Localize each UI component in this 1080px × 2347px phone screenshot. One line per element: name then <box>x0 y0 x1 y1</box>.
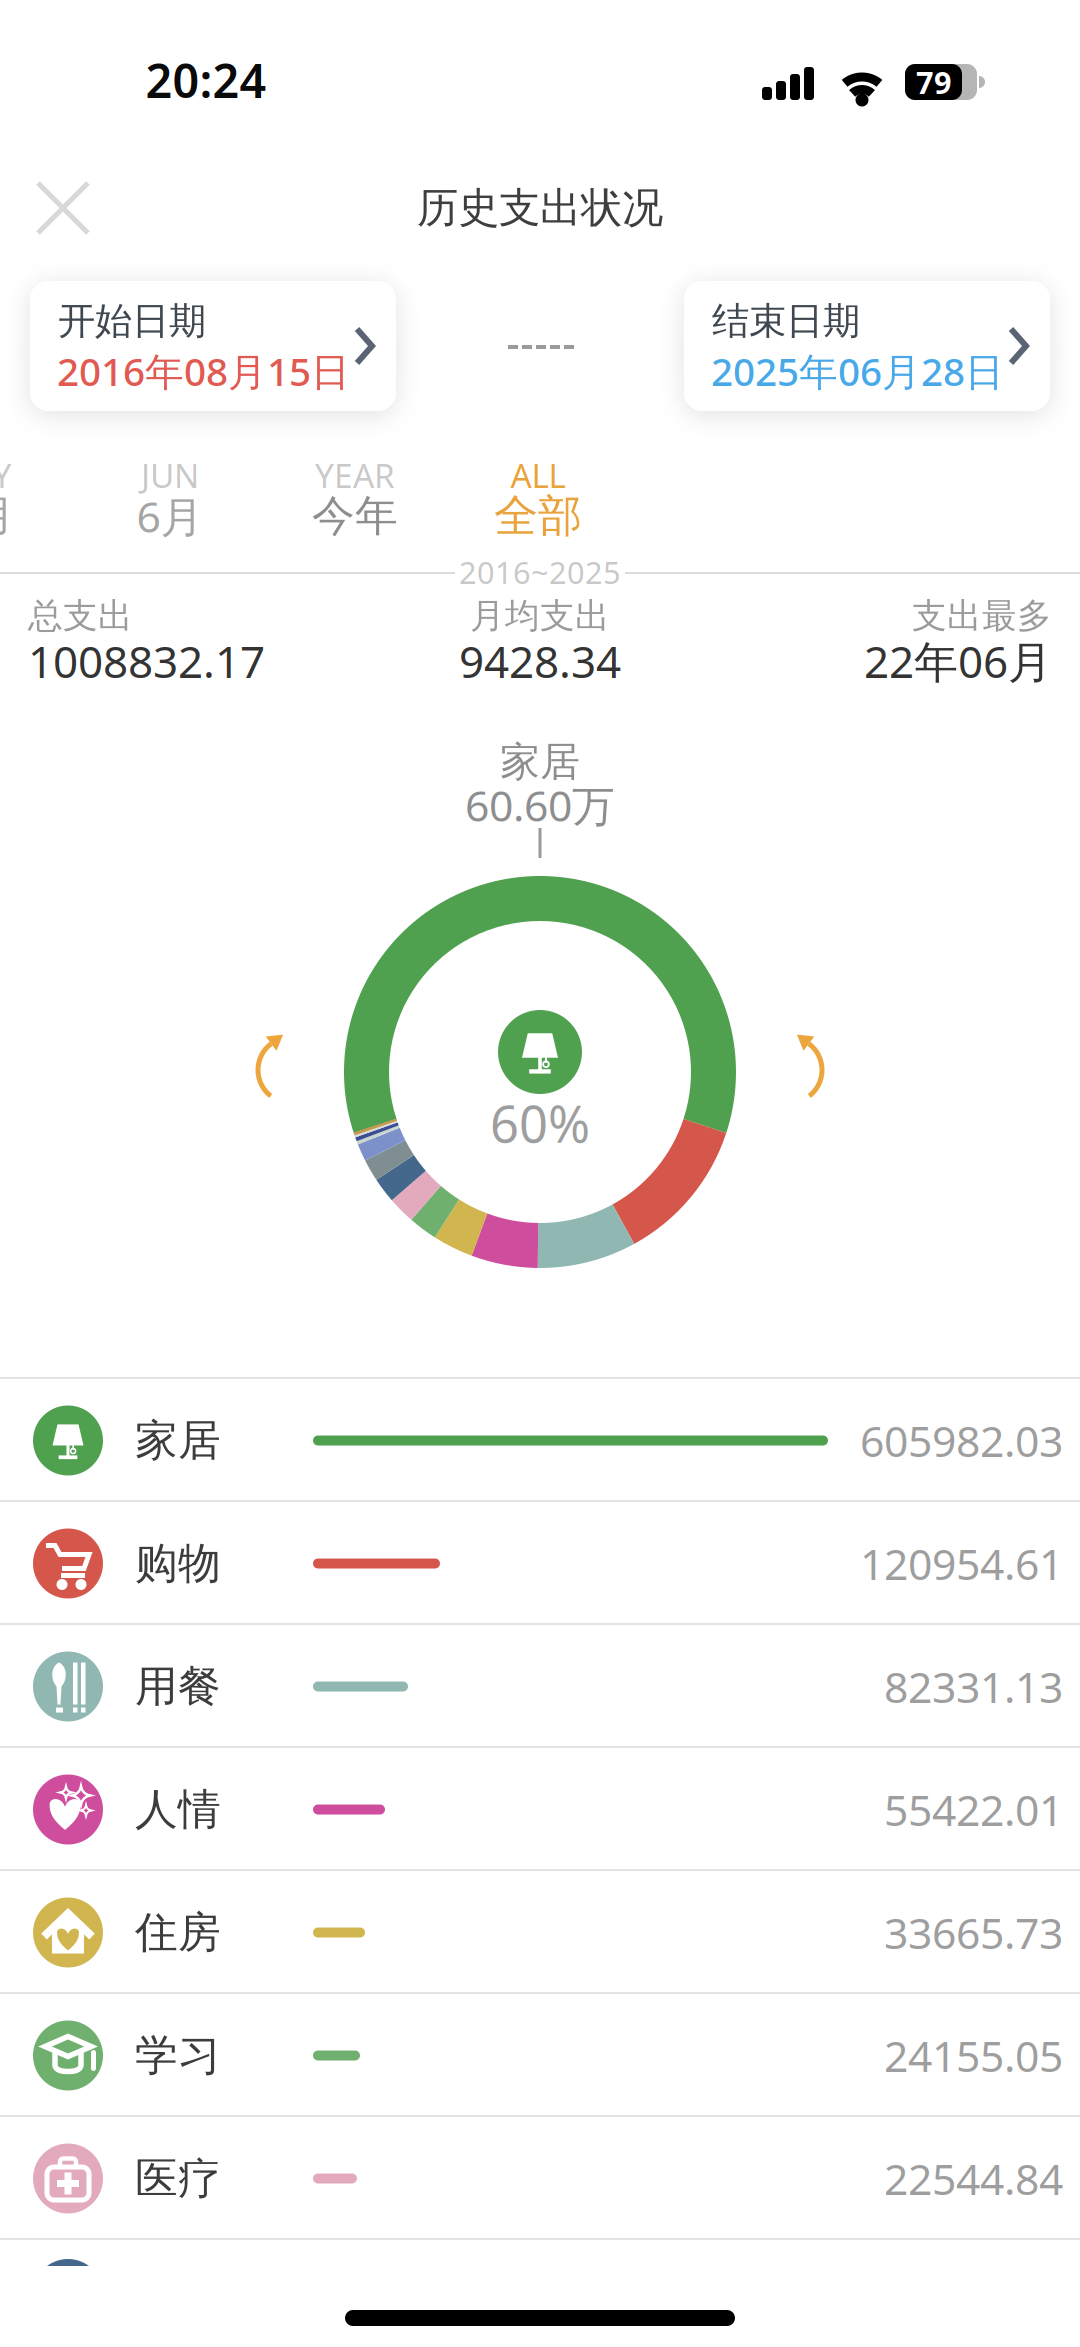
staticText: 120954.61 <box>860 1535 1063 1592</box>
button[interactable]: 用餐 <box>0 1625 1080 1748</box>
button[interactable]: Rotate right <box>756 1010 876 1130</box>
staticText: 2025年06月28日 <box>711 345 1004 397</box>
staticText: 今年 <box>312 490 398 542</box>
staticText: 医疗 <box>135 2152 221 2205</box>
staticText: 月 <box>0 490 15 542</box>
staticText: 用餐 <box>135 1660 221 1713</box>
button[interactable]: YEAR <box>275 455 435 537</box>
button[interactable]: 住房 <box>0 1871 1080 1994</box>
staticText: 33665.73 <box>884 1904 1063 1961</box>
staticText: 支出最多 <box>912 595 1052 637</box>
staticText: 605982.03 <box>860 1412 1063 1469</box>
button[interactable]: Rotate left <box>204 1010 324 1130</box>
button[interactable]: 家居 <box>0 1379 1080 1502</box>
staticText: 总支出 <box>28 595 133 637</box>
staticText: 24155.05 <box>884 2027 1063 2084</box>
staticText: 55422.01 <box>884 1781 1063 1838</box>
staticText: 82331.13 <box>884 1658 1063 1715</box>
staticText: 全部 <box>494 489 582 543</box>
staticText: 住房 <box>135 1906 221 1959</box>
staticText: 月均支出 <box>470 595 610 637</box>
staticText: 历史支出状况 <box>417 183 663 233</box>
staticText: 1008832.17 <box>28 632 265 690</box>
staticText: 60.60万 <box>465 777 615 833</box>
staticText: 2016年08月15日 <box>57 345 350 397</box>
staticText: JUN <box>141 453 199 497</box>
button[interactable]: 学习 <box>0 1994 1080 2117</box>
staticText: 9428.34 <box>459 632 621 690</box>
staticText: 家居 <box>135 1414 221 1467</box>
staticText: 22年06月 <box>864 632 1052 690</box>
button[interactable]: ALL <box>458 455 618 537</box>
button[interactable]: 开始日期 <box>30 281 396 411</box>
button[interactable]: JUN <box>90 455 250 537</box>
button[interactable]: Close <box>18 163 108 253</box>
staticText: 结束日期 <box>712 298 860 344</box>
staticText: 家居 <box>500 737 580 786</box>
button[interactable]: 人情 <box>0 1748 1080 1871</box>
staticText: 2016~2025 <box>459 552 621 592</box>
staticText: 购物 <box>135 1537 221 1590</box>
staticText: ALL <box>510 453 565 497</box>
staticText: 开始日期 <box>58 298 206 344</box>
staticText: YEAR <box>315 453 395 497</box>
staticText: 6月 <box>136 488 203 544</box>
staticText: 学习 <box>135 2029 221 2082</box>
button[interactable]: 医疗 <box>0 2117 1080 2240</box>
staticText: 人情 <box>135 1783 221 1836</box>
staticText: 60% <box>490 1089 590 1157</box>
staticText: 22544.84 <box>884 2150 1063 2207</box>
staticText: Y <box>0 453 11 497</box>
staticText: 20:24 <box>145 49 266 111</box>
button[interactable]: 购物 <box>0 1502 1080 1625</box>
button[interactable]: 结束日期 <box>684 281 1050 411</box>
staticText: 79 <box>916 62 952 102</box>
